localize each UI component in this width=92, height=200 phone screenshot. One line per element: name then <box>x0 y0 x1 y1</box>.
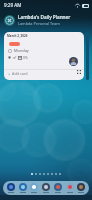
button[interactable]: Gallery <box>53 183 63 193</box>
button[interactable]: Phone <box>6 183 16 193</box>
staticText: Lambda Personal Team <box>18 21 60 26</box>
staticText: March 2, 2026 <box>7 34 28 38</box>
button[interactable]: Camera <box>41 183 51 193</box>
staticText: Lambda's Daily Planner <box>18 14 71 20</box>
button[interactable]: Store <box>65 183 75 193</box>
button[interactable]: March 2, 2026 <box>4 32 84 80</box>
button[interactable]: Contacts <box>76 183 86 193</box>
button[interactable]: Internet <box>29 183 39 193</box>
button[interactable]: Profile <box>69 57 78 66</box>
staticText: 9:29 AM <box>4 2 22 8</box>
staticText: 0% <box>23 55 28 60</box>
staticText: Monday <box>14 48 29 53</box>
button[interactable]: Open planner app <box>4 15 15 26</box>
button[interactable]: Messages <box>18 183 28 193</box>
staticText: + Add card <box>8 71 28 76</box>
